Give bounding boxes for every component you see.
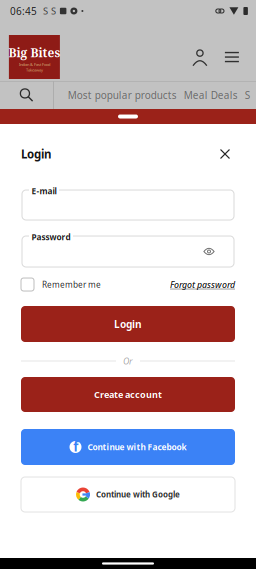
staticText: Meal Deals xyxy=(184,88,238,102)
staticText: E-mail xyxy=(31,185,56,197)
staticText: Big Bites xyxy=(8,44,60,61)
staticText: S xyxy=(51,5,56,17)
staticText: 06:45 xyxy=(10,4,37,18)
staticText: Continue with Google xyxy=(96,489,180,500)
button[interactable]: Meal Deals xyxy=(184,88,238,102)
staticText: Continue with Facebook xyxy=(87,441,186,453)
button[interactable]: Remember me xyxy=(21,278,101,291)
staticText: Takeaway xyxy=(26,67,43,72)
button[interactable]: Show password xyxy=(198,236,220,267)
button[interactable]: Menu xyxy=(221,46,243,68)
staticText: f xyxy=(73,437,78,455)
button[interactable]: f xyxy=(21,429,235,465)
staticText: S xyxy=(43,5,48,17)
staticText: Password xyxy=(31,231,70,243)
button[interactable]: Most popular products xyxy=(68,88,177,102)
button[interactable]: Login xyxy=(21,306,235,342)
button[interactable]: Continue with Google xyxy=(21,477,235,512)
button[interactable]: Create account xyxy=(21,377,235,412)
staticText: Remember me xyxy=(42,279,101,290)
staticText: Or xyxy=(123,355,133,367)
staticText: Indian & Fast Food xyxy=(19,62,50,67)
button[interactable]: Search xyxy=(0,81,53,109)
staticText: Login xyxy=(21,146,51,162)
button[interactable]: Account xyxy=(189,46,211,68)
button[interactable]: Close xyxy=(215,144,235,164)
staticText: Create account xyxy=(94,388,162,401)
staticText: Most popular products xyxy=(68,88,177,102)
staticText: Login xyxy=(114,317,142,331)
staticText: S xyxy=(245,88,250,102)
staticText: Forgot password xyxy=(170,278,235,290)
button[interactable]: Forgot password xyxy=(170,278,235,290)
